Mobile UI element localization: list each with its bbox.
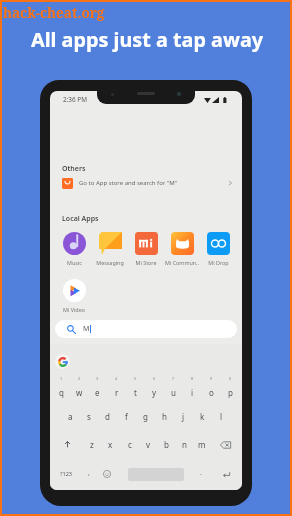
button[interactable]: Mi Store — [128, 232, 164, 266]
button[interactable]: k — [193, 406, 212, 427]
staticText: Mi Video — [63, 306, 85, 313]
button[interactable]: Shift — [52, 434, 82, 455]
button[interactable]: s — [79, 406, 98, 427]
button[interactable]: , — [80, 463, 98, 485]
staticText: ?123 — [60, 470, 73, 478]
staticText: r — [115, 387, 119, 398]
button[interactable]: Backspace — [211, 434, 240, 455]
staticText: a — [68, 411, 73, 422]
button[interactable]: j — [174, 406, 193, 427]
button[interactable]: 6 — [145, 377, 164, 402]
button[interactable]: 3 — [88, 377, 107, 402]
staticText: j — [182, 411, 185, 422]
button[interactable]: 2 — [70, 377, 88, 402]
button[interactable]: a — [61, 406, 79, 427]
staticText: 4 — [115, 376, 118, 381]
staticText: 3 — [96, 376, 99, 381]
staticText: 9 — [210, 376, 213, 381]
staticText: 2:36 PM — [63, 95, 88, 104]
staticText: t — [134, 387, 137, 398]
staticText: Others — [62, 164, 86, 174]
button[interactable]: 5 — [126, 377, 145, 402]
staticText: Local Apps — [62, 214, 99, 224]
button[interactable]: Emoji — [98, 463, 116, 485]
button[interactable]: m — [193, 434, 211, 455]
staticText: 6 — [153, 376, 156, 381]
staticText: Mi Commun.. — [165, 259, 199, 266]
button[interactable]: Messaging — [92, 232, 128, 266]
staticText: 8 — [191, 376, 194, 381]
button[interactable]: Enter — [216, 463, 236, 485]
staticText: , — [88, 468, 90, 478]
button[interactable]: Mi Commun.. — [164, 232, 200, 266]
staticText: f — [125, 411, 128, 422]
staticText: i — [191, 387, 194, 398]
staticText: z — [90, 439, 94, 450]
staticText: Go to App store and search for "M" — [79, 179, 178, 187]
staticText: y — [152, 387, 157, 398]
staticText: Music — [67, 259, 82, 266]
staticText: w — [76, 387, 83, 398]
button[interactable]: n — [175, 434, 193, 455]
staticText: u — [171, 387, 176, 398]
button[interactable]: c — [120, 434, 139, 455]
staticText: e — [95, 387, 100, 398]
staticText: hack-cheat.org — [3, 4, 105, 22]
staticText: c — [128, 439, 132, 450]
staticText: o — [209, 387, 214, 398]
button[interactable]: Music — [56, 232, 92, 266]
button[interactable]: g — [136, 406, 155, 427]
staticText: b — [164, 439, 169, 450]
button[interactable]: 9 — [202, 377, 221, 402]
staticText: v — [146, 439, 151, 450]
staticText: . — [200, 468, 202, 478]
button[interactable]: z — [82, 434, 101, 455]
staticText: x — [108, 439, 113, 450]
button[interactable]: 0 — [221, 377, 240, 402]
staticText: d — [105, 411, 110, 422]
staticText: h — [162, 411, 167, 422]
staticText: M — [83, 324, 90, 334]
button[interactable]: Mi Video — [56, 279, 92, 313]
button[interactable]: d — [98, 406, 117, 427]
button[interactable]: Mi Drop — [200, 232, 236, 266]
staticText: 2 — [78, 376, 81, 381]
button[interactable]: M — [55, 320, 237, 338]
staticText: All apps just a tap away — [3, 26, 291, 53]
button[interactable]: v — [139, 434, 157, 455]
button[interactable]: f — [117, 406, 136, 427]
staticText: s — [87, 411, 91, 422]
staticText: q — [59, 387, 64, 398]
button[interactable]: l — [212, 406, 231, 427]
staticText: k — [200, 411, 205, 422]
staticText: Messaging — [96, 259, 124, 266]
staticText: m — [198, 439, 206, 450]
staticText: 1 — [60, 376, 63, 381]
button[interactable]: h — [155, 406, 174, 427]
button[interactable]: ?123 — [52, 463, 80, 485]
staticText: Mi Drop — [208, 259, 229, 266]
staticText: p — [228, 387, 233, 398]
button[interactable]: 1 — [52, 377, 70, 402]
button[interactable]: 7 — [164, 377, 183, 402]
staticText: 7 — [172, 376, 175, 381]
button[interactable]: Go to App store and search for "M" — [50, 173, 242, 193]
staticText: g — [143, 411, 148, 422]
button[interactable]: 8 — [183, 377, 202, 402]
staticText: Mi Store — [135, 259, 157, 266]
staticText: 0 — [229, 376, 232, 381]
button[interactable]: 4 — [107, 377, 126, 402]
button[interactable]: b — [157, 434, 175, 455]
button[interactable]: x — [101, 434, 120, 455]
staticText: l — [220, 411, 223, 422]
button[interactable]: Google — [55, 354, 70, 369]
staticText: 5 — [134, 376, 137, 381]
staticText: n — [182, 439, 187, 450]
